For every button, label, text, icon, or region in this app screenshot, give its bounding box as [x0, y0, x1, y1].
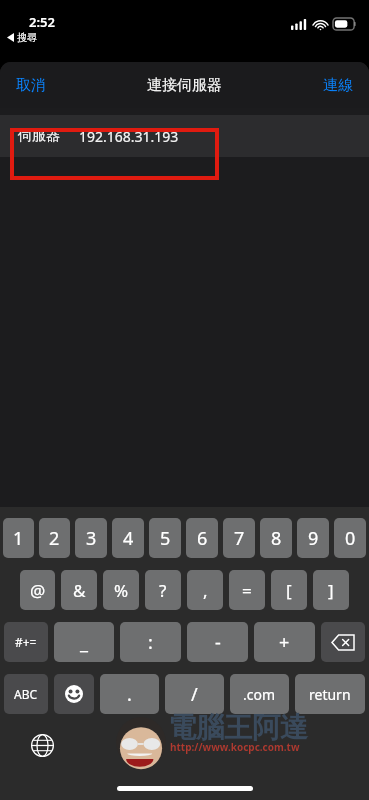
button[interactable]: +	[254, 622, 315, 662]
staticText: http://www.kocpc.com.tw	[170, 740, 300, 754]
button[interactable]: %	[103, 570, 139, 610]
button[interactable]: .com	[230, 674, 289, 714]
button[interactable]: &	[61, 570, 97, 610]
staticText: 3	[86, 526, 97, 551]
staticText: 電腦王阿達	[168, 710, 308, 745]
button[interactable]: =	[229, 570, 265, 610]
staticText: 6	[197, 526, 208, 551]
staticText: #+=	[15, 634, 37, 650]
staticText: ?	[159, 579, 167, 602]
button[interactable]: 6	[186, 518, 218, 558]
staticText: -	[215, 630, 221, 655]
button[interactable]: ,	[187, 570, 223, 610]
button[interactable]: Backspace	[321, 622, 365, 662]
staticText: /	[191, 682, 198, 707]
staticText: 取消	[16, 76, 46, 95]
button[interactable]: #+=	[4, 622, 48, 662]
button[interactable]: @	[20, 570, 55, 610]
staticText: @	[30, 579, 46, 602]
staticText: 連接伺服器	[147, 76, 222, 95]
staticText: .	[127, 682, 132, 707]
button[interactable]: ]	[313, 570, 349, 610]
staticText: :	[148, 630, 153, 655]
staticText: 9	[308, 526, 319, 551]
button[interactable]: 2	[39, 518, 70, 558]
button[interactable]: 8	[260, 518, 292, 558]
staticText: 伺服器	[18, 127, 60, 145]
button[interactable]: 0	[334, 518, 366, 558]
staticText: ABC	[14, 686, 38, 702]
staticText: 0	[345, 526, 356, 551]
staticText: 連線	[323, 76, 353, 95]
staticText: 5	[160, 526, 171, 551]
button[interactable]: Emoji	[54, 674, 94, 714]
staticText: 1	[13, 526, 24, 551]
button[interactable]: 3	[75, 518, 107, 558]
staticText: 7	[234, 526, 245, 551]
button[interactable]: .	[100, 674, 159, 714]
staticText: +	[279, 630, 290, 655]
button[interactable]: 5	[149, 518, 181, 558]
staticText: [	[286, 579, 292, 602]
staticText: =	[242, 579, 252, 602]
staticText: &	[73, 579, 86, 602]
staticText: 192.168.31.193	[79, 127, 179, 146]
button[interactable]: /	[165, 674, 224, 714]
button[interactable]: Change keyboard	[25, 728, 59, 762]
staticText: ,	[203, 579, 208, 602]
button[interactable]: 取消	[16, 62, 46, 108]
staticText: 2	[49, 526, 60, 551]
staticText: 2:52	[29, 13, 55, 31]
staticText: .com	[243, 685, 276, 704]
staticText: ]	[328, 579, 334, 602]
button[interactable]: _	[54, 622, 114, 662]
button[interactable]: ABC	[4, 674, 48, 714]
button[interactable]: 9	[297, 518, 329, 558]
staticText: return	[309, 685, 351, 704]
button[interactable]: 1	[3, 518, 34, 558]
button[interactable]: -	[187, 622, 248, 662]
button[interactable]: :	[120, 622, 181, 662]
button[interactable]: return	[295, 674, 365, 714]
staticText: 8	[271, 526, 282, 551]
button[interactable]: 7	[223, 518, 255, 558]
button[interactable]: 連線	[323, 62, 353, 108]
staticText: %	[114, 579, 129, 602]
staticText: 4	[123, 526, 134, 551]
button[interactable]: ?	[145, 570, 181, 610]
button[interactable]: 4	[112, 518, 144, 558]
button[interactable]: [	[271, 570, 307, 610]
button[interactable]: 伺服器	[0, 115, 369, 157]
staticText: 搜尋	[17, 31, 37, 44]
staticText: _	[80, 630, 88, 655]
